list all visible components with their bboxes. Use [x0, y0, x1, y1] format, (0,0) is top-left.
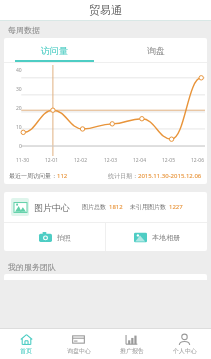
staticText: 我的服务团队 [8, 262, 56, 272]
staticText: 12-04 [133, 157, 147, 164]
staticText: 拍照 [57, 233, 71, 242]
staticText: 10 [16, 124, 22, 131]
staticText: 1812 [109, 203, 123, 211]
button[interactable]: 推广报告 [105, 329, 158, 359]
staticText: 贸易通 [89, 3, 122, 17]
staticText: 1227 [169, 203, 183, 211]
staticText: 12-01 [45, 157, 59, 164]
staticText: 询盘中心 [67, 347, 91, 355]
staticText: 112 [57, 172, 68, 180]
staticText: 0 [19, 143, 22, 150]
button[interactable]: 拍照 [4, 223, 105, 251]
staticText: 12-03 [104, 157, 118, 164]
staticText: 40 [16, 67, 22, 74]
staticText: 最近一周访问量： [9, 172, 57, 180]
button[interactable]: 询盘中心 [52, 329, 105, 359]
staticText: 本地相册 [152, 233, 180, 242]
staticText: 统计日期： [108, 172, 138, 180]
staticText: 推广报告 [120, 347, 144, 355]
button[interactable]: 本地相册 [106, 223, 207, 251]
staticText: 图片总数 [82, 203, 106, 211]
staticText: 询盘 [147, 45, 165, 56]
staticText: 个人中心 [173, 347, 197, 355]
staticText: 12-05 [162, 157, 176, 164]
staticText: 图片中心 [34, 202, 70, 213]
staticText: 每周数据 [8, 25, 40, 35]
staticText: 12-02 [74, 157, 88, 164]
button[interactable]: 首页 [0, 329, 52, 359]
staticText: 首页 [20, 347, 32, 355]
button[interactable]: 个人中心 [158, 329, 211, 359]
button[interactable]: 图片中心 [4, 192, 207, 222]
staticText: 访问量 [41, 45, 68, 56]
staticText: 30 [16, 86, 22, 93]
staticText: 12-06 [191, 157, 205, 164]
staticText: 2015.11.30-2015.12.06 [138, 172, 202, 180]
staticText: 未引用图片数 [130, 203, 166, 211]
staticText: 11-30 [16, 157, 30, 164]
button[interactable]: 访问量 [4, 38, 105, 62]
button[interactable]: 询盘 [105, 38, 207, 62]
staticText: 20 [16, 105, 22, 112]
